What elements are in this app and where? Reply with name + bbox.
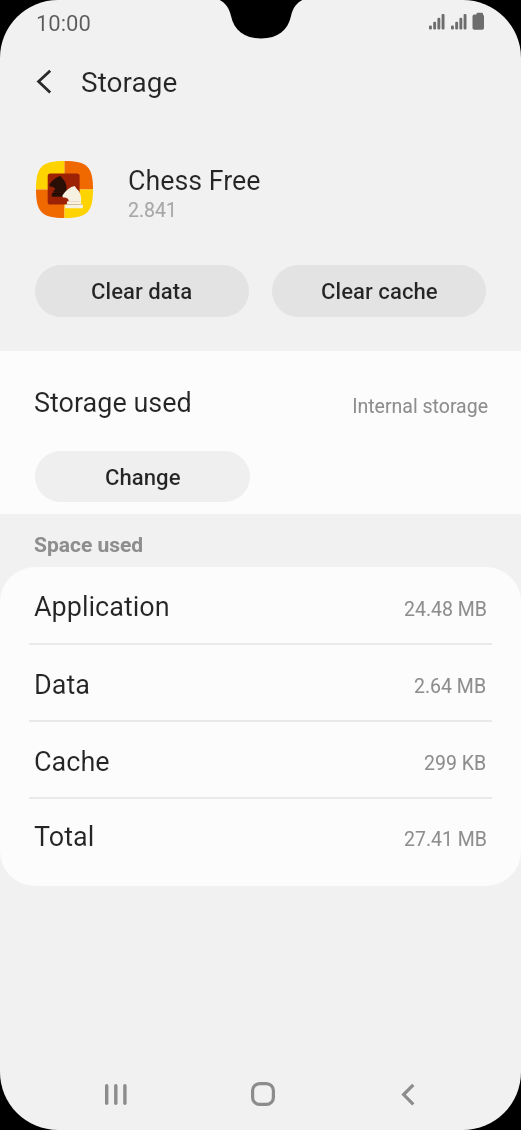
staticText: 10:00	[36, 11, 91, 37]
staticText: Cache	[34, 746, 110, 778]
button[interactable]: Application	[0, 567, 521, 643]
staticText: 24.48 MB	[404, 598, 487, 621]
button[interactable]: Change	[35, 451, 250, 502]
button[interactable]: Navigate up	[22, 59, 68, 105]
staticText: Clear cache	[321, 278, 438, 304]
button[interactable]: Data	[0, 645, 521, 720]
button[interactable]: Recents	[93, 1071, 139, 1117]
button[interactable]: Clear data	[35, 265, 249, 317]
staticText: Total	[34, 821, 95, 853]
staticText: 2.64 MB	[414, 675, 487, 698]
staticText: Change	[105, 464, 181, 490]
button[interactable]: Clear cache	[272, 265, 486, 317]
button[interactable]: Cache	[0, 722, 521, 797]
staticText: Storage	[81, 66, 178, 99]
staticText: Storage used	[34, 387, 192, 419]
staticText: 2.841	[128, 199, 177, 222]
button[interactable]: Total	[0, 799, 521, 871]
staticText: 27.41 MB	[404, 828, 487, 851]
button[interactable]: Back	[385, 1071, 431, 1117]
staticText: Application	[34, 591, 170, 623]
staticText: Data	[34, 669, 90, 701]
staticText: 299 KB	[424, 752, 487, 775]
staticText: Chess Free	[128, 165, 261, 196]
staticText: Clear data	[91, 278, 193, 304]
button[interactable]: Home	[240, 1071, 286, 1117]
staticText: Internal storage	[340, 395, 488, 418]
staticText: Space used	[34, 533, 144, 558]
